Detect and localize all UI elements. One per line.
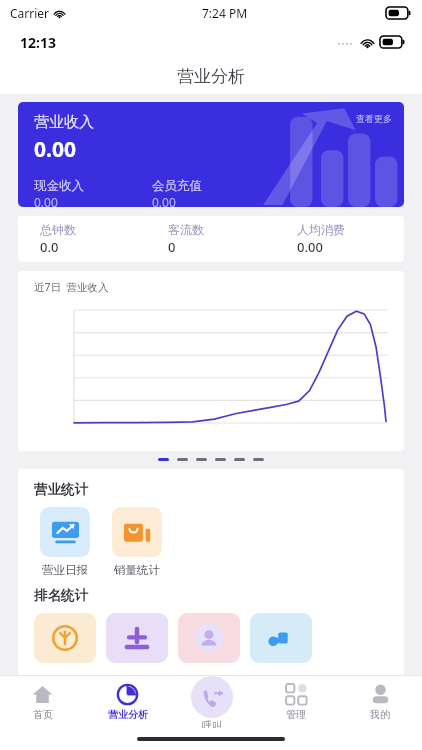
staticText: 营业日报 [42,563,88,577]
button[interactable]: 营业分析 [85,676,170,728]
staticText: 12:13 [20,33,56,52]
staticText: 总钟数 [40,222,76,237]
staticText: 排名统计 [34,587,88,604]
button[interactable] [196,458,207,461]
button[interactable]: 我的 [338,676,422,728]
staticText: 呼叫 [202,719,222,728]
staticText: 销量统计 [114,563,160,577]
staticText: 营业收入 [34,113,94,132]
staticText: 近7日 营业收入 [34,280,109,294]
staticText: 首页 [33,708,53,721]
staticText: 营业分析 [177,66,245,87]
other: 呼叫 [191,676,233,718]
button[interactable]: 人均消费 [275,216,404,262]
button[interactable]: 营业收入 [18,102,404,207]
staticText: 现金收入 [34,178,84,194]
button[interactable]: 排名统计项 [178,613,240,663]
staticText: 管理 [286,708,306,721]
button[interactable] [253,458,264,461]
staticText: 0.00 [34,194,58,207]
staticText: 查看更多 [356,113,392,124]
button[interactable]: 管理 [254,676,338,728]
staticText: 营业统计 [34,481,88,498]
staticText: Carrier [10,5,50,21]
button[interactable]: 营业日报 [34,507,96,577]
button[interactable]: 总钟数 [18,216,146,262]
button[interactable]: 首页 [0,676,85,728]
staticText: 0.00 [34,135,76,164]
button[interactable]: 销量统计 [106,507,168,577]
button[interactable]: 呼叫 [170,676,254,728]
staticText: 人均消费 [297,222,345,237]
staticText: 0 [168,238,176,256]
button[interactable]: 排名统计项 [34,613,96,663]
button[interactable]: 客流数 [146,216,275,262]
staticText: 我的 [370,708,390,721]
button[interactable] [215,458,226,461]
button[interactable] [177,458,188,461]
button[interactable] [158,458,169,461]
staticText: 会员充值 [152,178,202,194]
staticText: 0.0 [40,238,59,256]
button[interactable] [234,458,245,461]
staticText: 7:24 PM [202,5,248,21]
button[interactable]: 排名统计项 [106,613,168,663]
button[interactable]: 排名统计项 [250,613,312,663]
staticText: 客流数 [168,222,204,237]
staticText: 0.00 [297,238,323,256]
staticText: 0.00 [152,194,176,207]
staticText: 营业分析 [108,708,148,721]
